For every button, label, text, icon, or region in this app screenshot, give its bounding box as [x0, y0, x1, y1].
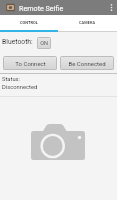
- staticText: Remote Selfie: [19, 4, 64, 12]
- staticText: CONTROL: [20, 20, 38, 25]
- button[interactable]: Be Connected: [60, 56, 114, 70]
- button[interactable]: More options: [106, 0, 117, 15]
- staticText: Bluetooth:: [2, 38, 33, 46]
- staticText: Status:: [2, 76, 20, 83]
- button[interactable]: CAMERA: [58, 15, 117, 30]
- button[interactable]: ON: [37, 37, 51, 49]
- button[interactable]: CONTROL: [0, 15, 58, 30]
- staticText: To Connect: [15, 60, 46, 67]
- staticText: ON: [40, 40, 48, 46]
- button[interactable]: To Connect: [3, 56, 57, 70]
- staticText: CAMERA: [79, 20, 96, 25]
- staticText: Disconnected: [2, 84, 38, 91]
- staticText: Be Connected: [68, 60, 106, 67]
